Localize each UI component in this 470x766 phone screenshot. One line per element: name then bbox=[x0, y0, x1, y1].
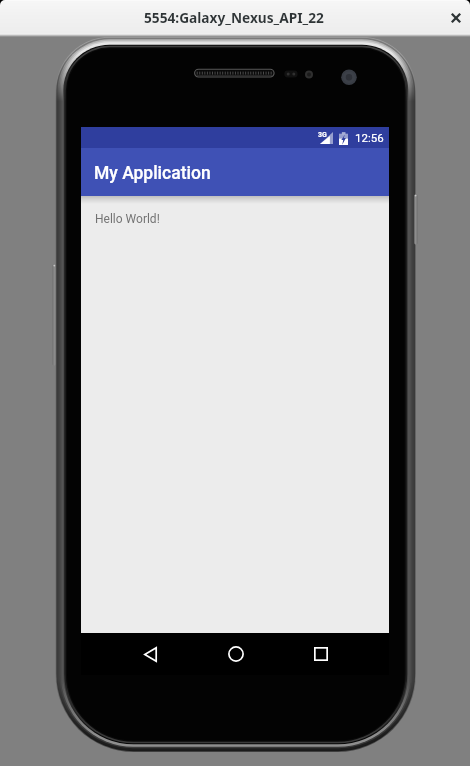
staticText: 3G bbox=[318, 131, 327, 139]
button[interactable]: Home bbox=[214, 633, 258, 675]
staticText: Hello World! bbox=[95, 212, 160, 226]
staticText: My Application bbox=[94, 163, 211, 184]
button[interactable]: Close window bbox=[442, 4, 470, 32]
staticText: 5554:Galaxy_Nexus_API_22 bbox=[144, 8, 324, 27]
button[interactable]: Back bbox=[128, 633, 172, 675]
button[interactable]: Recent apps bbox=[299, 633, 343, 675]
staticText: 12:56 bbox=[355, 131, 384, 144]
